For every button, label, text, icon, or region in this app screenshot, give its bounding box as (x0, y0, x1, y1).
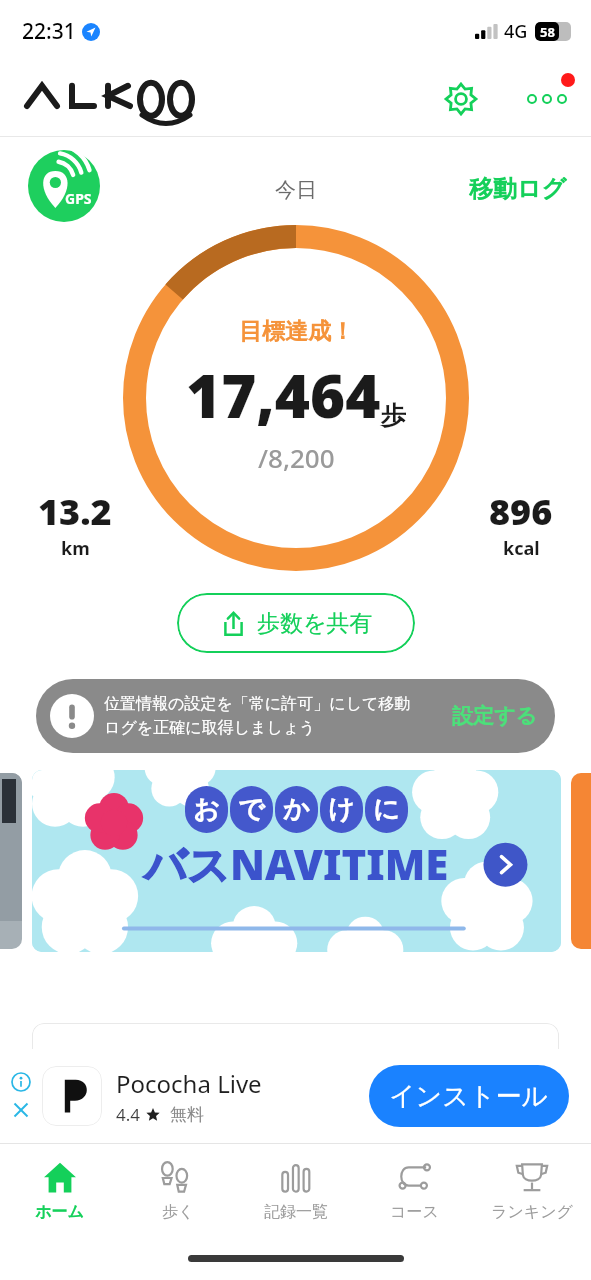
button[interactable] (20, 77, 162, 121)
button[interactable]: ランキング (473, 1144, 591, 1236)
staticText: 17,464 (186, 354, 381, 436)
button[interactable]: 設定する (448, 695, 541, 737)
button[interactable]: コース (355, 1144, 473, 1236)
staticText: /8,200 (258, 440, 335, 475)
staticText: ログを正確に取得しましょう (104, 718, 316, 738)
button[interactable]: Ad information (0, 1049, 591, 1143)
staticText: kcal (503, 536, 540, 561)
staticText: km (61, 536, 90, 561)
button[interactable]: 移動ログ (461, 168, 575, 210)
button[interactable]: 記録一覧 (237, 1144, 355, 1236)
staticText: 58 (540, 23, 555, 41)
staticText: バスNAVITIME (144, 835, 449, 892)
staticText: 歩数を共有 (257, 609, 373, 638)
staticText: 4G (504, 19, 528, 44)
button[interactable]: Settings (435, 73, 487, 125)
staticText: 位置情報の設定を「常に許可」にして移動 (104, 694, 411, 714)
staticText: 設定する (452, 703, 537, 729)
staticText: に (373, 793, 400, 826)
button[interactable]: 位置情報の設定を「常に許可」にして移動 (36, 679, 555, 753)
button[interactable] (0, 773, 22, 949)
button[interactable]: 歩く (119, 1144, 237, 1236)
staticText: 22:31 (22, 17, 76, 46)
button[interactable]: お (32, 770, 561, 952)
button[interactable]: GPS tracking (26, 148, 102, 224)
staticText: で (238, 793, 265, 826)
staticText: ランキング (491, 1202, 573, 1222)
staticText: 4.4 (116, 1103, 141, 1126)
button[interactable]: Close ad (11, 1100, 31, 1120)
staticText: 目標達成！ (239, 317, 354, 346)
button[interactable] (571, 773, 591, 949)
button[interactable]: 歩数を共有 (177, 593, 415, 653)
staticText: Pococha Live (116, 1067, 262, 1100)
staticText: 移動ログ (469, 174, 567, 204)
button[interactable]: Ad information (11, 1072, 31, 1092)
staticText: お (193, 793, 220, 826)
button[interactable]: ホーム (0, 1144, 119, 1236)
staticText: 13.2 (38, 487, 112, 536)
staticText: け (328, 793, 355, 826)
button[interactable]: インストール (369, 1065, 569, 1127)
staticText: コース (390, 1202, 439, 1222)
staticText: 今日 (275, 177, 317, 203)
staticText: GPS (65, 189, 92, 208)
staticText: 歩く (162, 1202, 195, 1222)
staticText: 歩 (381, 400, 406, 431)
staticText: 無料 (170, 1104, 204, 1125)
staticText: 896 (489, 487, 553, 536)
staticText: か (283, 793, 310, 826)
button[interactable]: More options (519, 71, 575, 127)
staticText: インストール (389, 1080, 549, 1113)
staticText: ホーム (35, 1202, 84, 1222)
staticText: 記録一覧 (264, 1202, 328, 1222)
